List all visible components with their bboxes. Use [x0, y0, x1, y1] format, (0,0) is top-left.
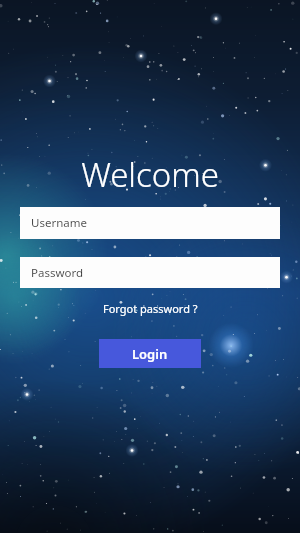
button[interactable]: Forgot password ?: [97, 299, 204, 318]
staticText: Forgot password ?: [103, 301, 198, 316]
staticText: Login: [132, 345, 168, 363]
button[interactable]: Username: [20, 207, 280, 239]
staticText: Password: [31, 265, 84, 281]
button[interactable]: Login: [99, 339, 201, 368]
button[interactable]: Password: [20, 257, 280, 288]
staticText: Username: [31, 215, 87, 231]
staticText: Welcome: [0, 152, 300, 197]
